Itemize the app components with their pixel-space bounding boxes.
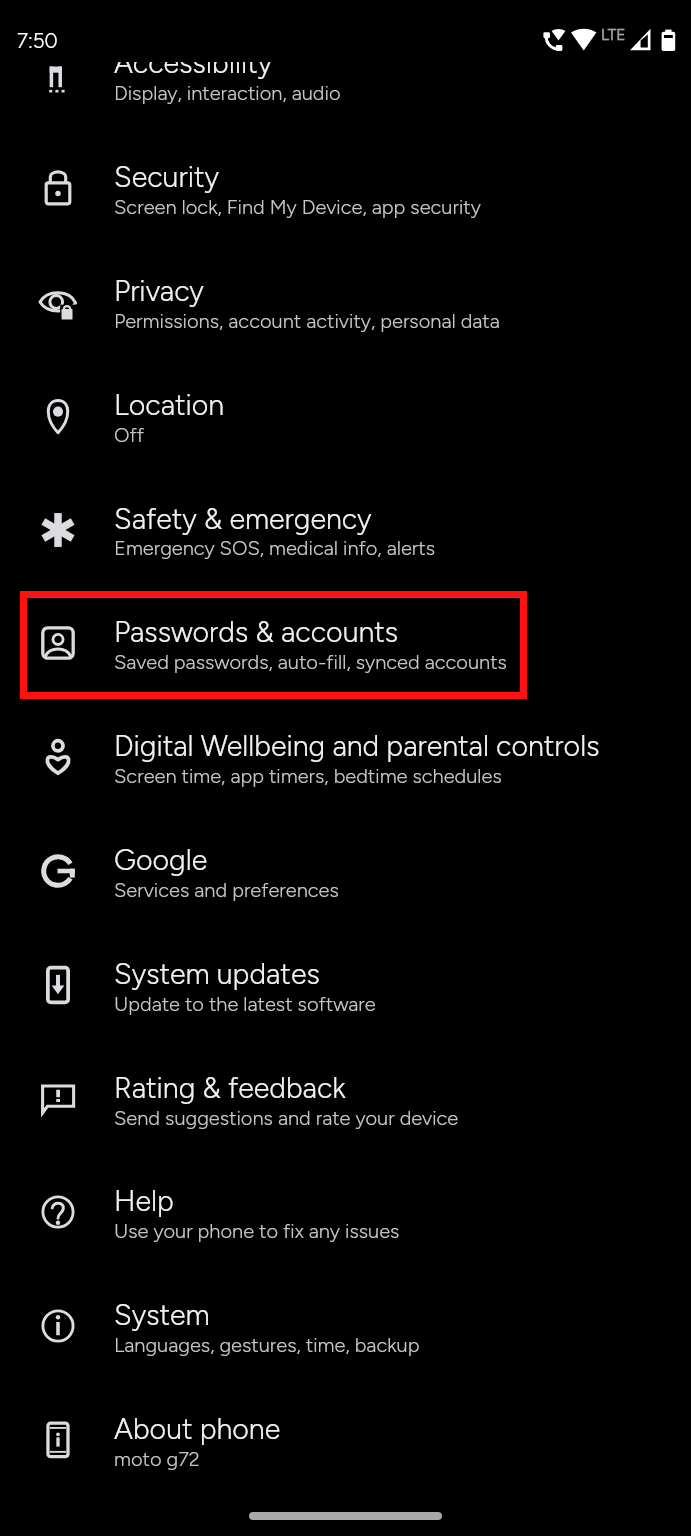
staticText: Rating & feedback: [114, 1071, 346, 1105]
staticText: Update to the latest software: [114, 992, 376, 1016]
button[interactable]: Location: [0, 364, 691, 478]
button[interactable]: Security: [0, 136, 691, 250]
staticText: Location: [114, 388, 225, 422]
staticText: About phone: [114, 1412, 281, 1446]
staticText: System updates: [114, 957, 320, 991]
staticText: Help: [114, 1184, 174, 1218]
button[interactable]: System: [0, 1274, 691, 1388]
staticText: Permissions, account activity, personal …: [114, 309, 500, 333]
button[interactable]: Help: [0, 1160, 691, 1274]
button[interactable]: Google: [0, 819, 691, 933]
staticText: Passwords & accounts: [114, 615, 399, 649]
button[interactable]: Privacy: [0, 250, 691, 364]
staticText: Privacy: [114, 274, 204, 308]
staticText: Emergency SOS, medical info, alerts: [114, 536, 435, 560]
staticText: Security: [114, 160, 219, 194]
staticText: Screen lock, Find My Device, app securit…: [114, 195, 481, 219]
staticText: Saved passwords, auto-fill, synced accou…: [114, 650, 507, 674]
staticText: Screen time, app timers, bedtime schedul…: [114, 764, 502, 788]
staticText: moto g72: [114, 1447, 200, 1471]
button[interactable]: Accessibility: [0, 22, 691, 136]
staticText: Digital Wellbeing and parental controls: [114, 729, 600, 763]
staticText: Safety & emergency: [114, 502, 372, 536]
staticText: Google: [114, 843, 208, 877]
button[interactable]: System updates: [0, 933, 691, 1047]
button[interactable]: Rating & feedback: [0, 1047, 691, 1161]
staticText: 7:50: [17, 28, 58, 53]
staticText: Services and preferences: [114, 878, 339, 902]
staticText: LTE: [601, 25, 626, 44]
staticText: Display, interaction, audio: [114, 81, 341, 105]
button[interactable]: Passwords & accounts: [0, 591, 691, 705]
staticText: Languages, gestures, time, backup: [114, 1333, 420, 1357]
staticText: Use your phone to fix any issues: [114, 1219, 400, 1243]
button[interactable]: Digital Wellbeing and parental controls: [0, 705, 691, 819]
staticText: Accessibility: [114, 46, 273, 80]
button[interactable]: About phone: [0, 1388, 691, 1502]
staticText: System: [114, 1298, 210, 1332]
staticText: Send suggestions and rate your device: [114, 1106, 459, 1130]
staticText: Off: [114, 423, 144, 447]
button[interactable]: Safety & emergency: [0, 478, 691, 592]
